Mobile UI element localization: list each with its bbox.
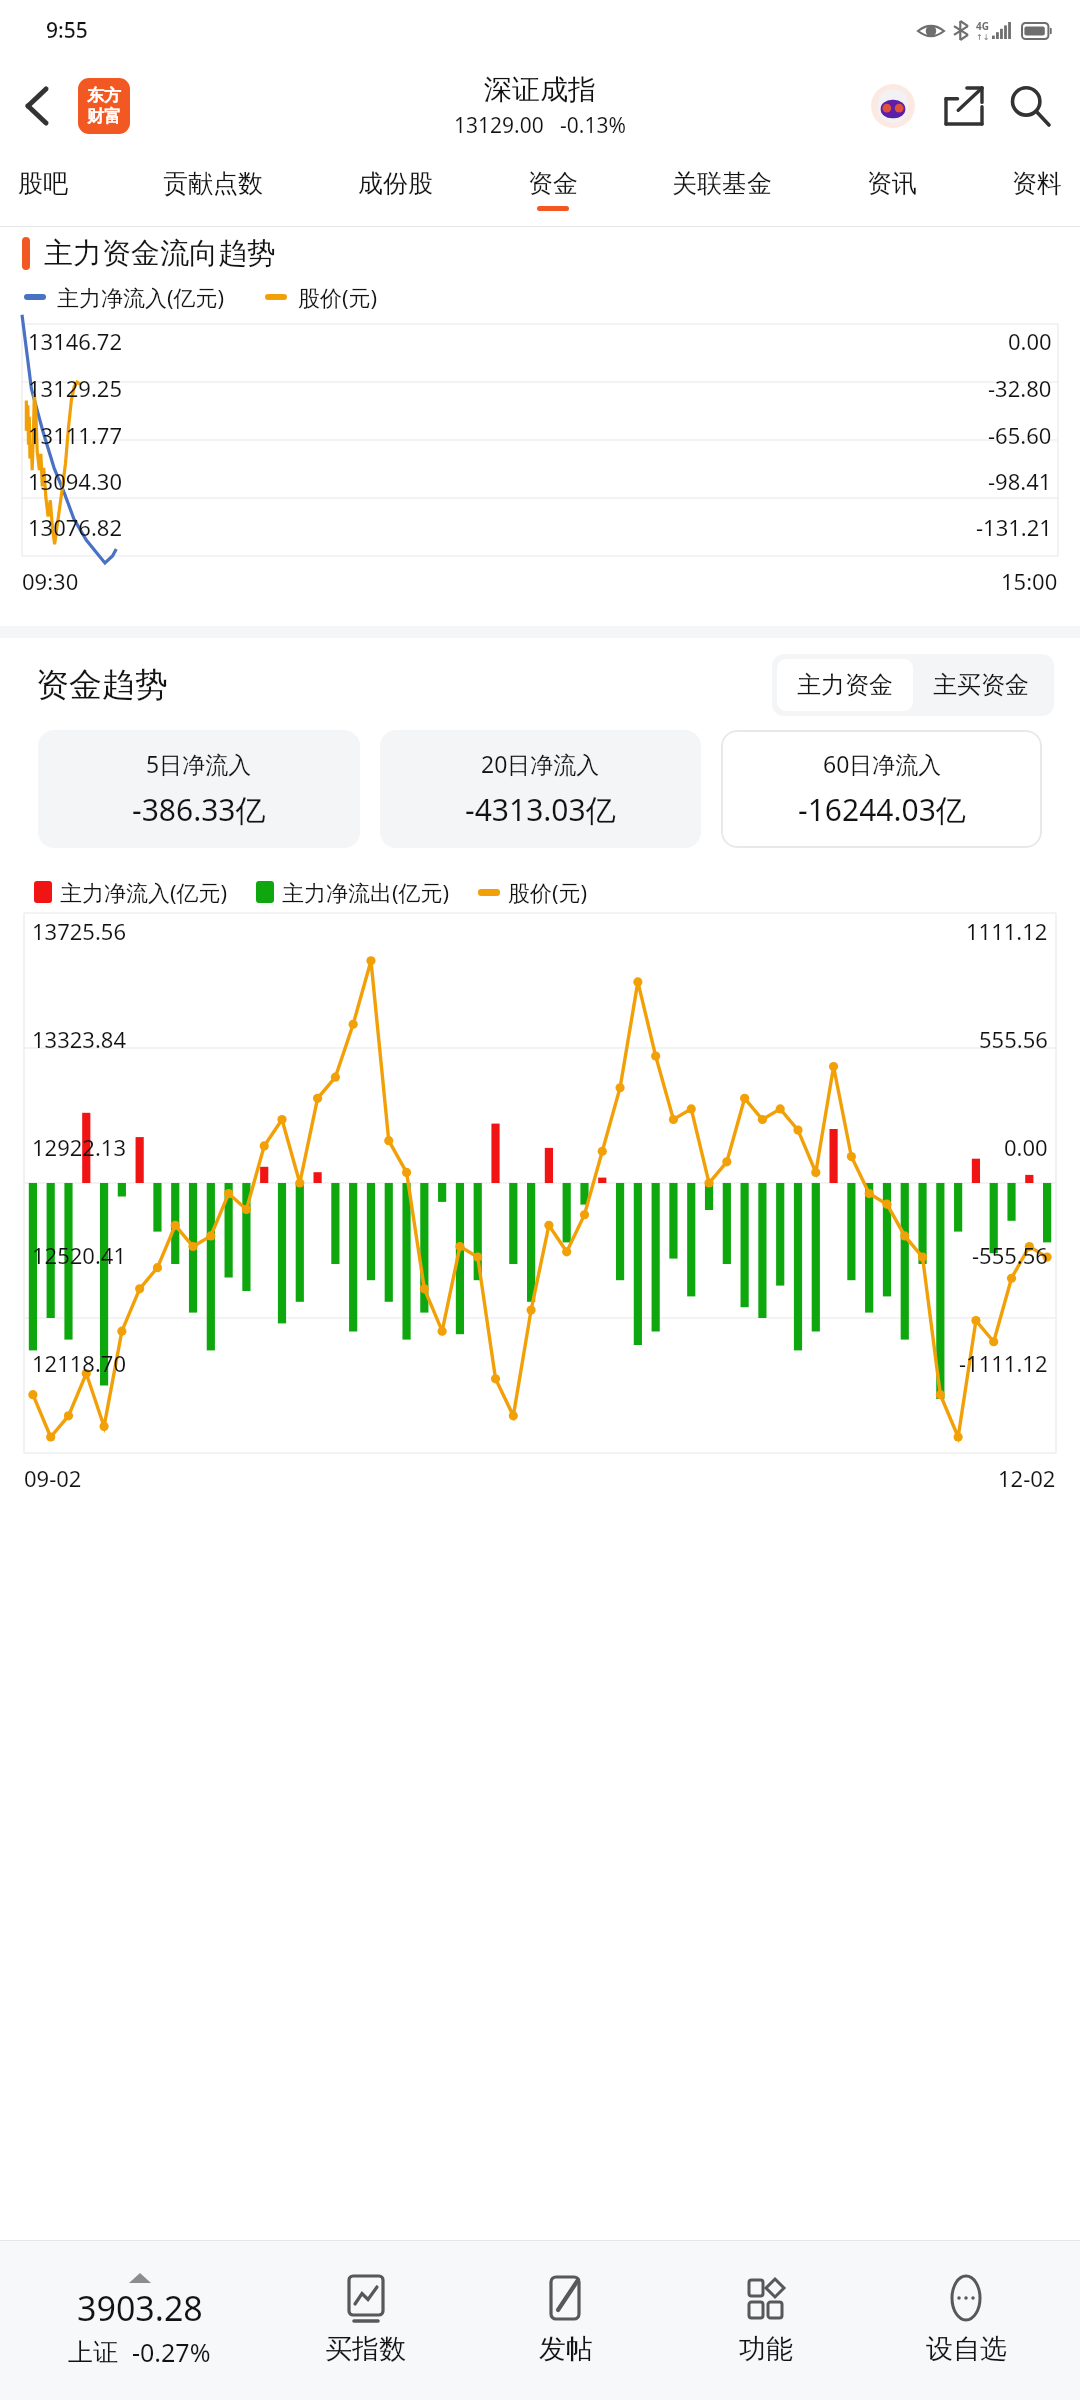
button[interactable]: Search — [1002, 78, 1058, 134]
button[interactable]: 发帖 — [466, 2268, 666, 2374]
staticText: 发帖 — [539, 2332, 593, 2366]
staticText: 贡献点数 — [163, 168, 263, 199]
staticText: 0.00 — [1004, 1132, 1048, 1162]
button[interactable]: 设自选 — [866, 2268, 1066, 2374]
staticText: 主买资金 — [933, 670, 1029, 700]
staticText: 1111.12 — [966, 916, 1048, 946]
staticText: 13111.77 — [28, 420, 122, 450]
staticText: 设自选 — [926, 2332, 1007, 2366]
button[interactable]: 5日净流入 — [38, 730, 360, 848]
staticText: 主力资金流向趋势 — [44, 235, 276, 272]
button[interactable]: 资料 — [1008, 164, 1066, 215]
staticText: -131.21 — [976, 512, 1052, 542]
staticText: 13323.84 — [32, 1024, 126, 1054]
button[interactable]: 买指数 — [265, 2268, 466, 2374]
staticText: 主力净流入(亿元) — [60, 877, 228, 907]
staticText: 12118.70 — [32, 1348, 126, 1378]
staticText: 主力资金 — [797, 670, 893, 700]
button[interactable]: Back — [18, 81, 54, 131]
staticText: 资讯 — [867, 168, 917, 199]
button[interactable]: East Money — [78, 78, 130, 134]
staticText: 13725.56 — [32, 916, 126, 946]
button[interactable]: 贡献点数 — [159, 164, 267, 215]
staticText: -386.33亿 — [132, 789, 266, 830]
staticText: 关联基金 — [672, 168, 772, 199]
staticText: 09-02 — [24, 1463, 82, 1493]
staticText: 60日净流入 — [823, 748, 942, 779]
button[interactable]: 功能 — [666, 2268, 866, 2374]
staticText: 3903.28 — [77, 2285, 203, 2331]
staticText: 上证 — [68, 2337, 118, 2368]
button[interactable]: 20日净流入 — [380, 730, 701, 848]
staticText: -0.27% — [132, 2335, 211, 2369]
button[interactable]: 主力资金 — [777, 659, 913, 711]
staticText: 股价(元) — [508, 877, 588, 907]
staticText: ↑↓ — [976, 33, 990, 42]
staticText: 功能 — [739, 2332, 793, 2366]
staticText: -4313.03亿 — [465, 789, 616, 830]
staticText: 深证成指 — [484, 72, 596, 107]
staticText: 资金 — [528, 168, 578, 199]
staticText: 0.00 — [1008, 326, 1052, 356]
staticText: 9:55 — [46, 16, 88, 45]
staticText: 15:00 — [1001, 566, 1058, 596]
staticText: 12922.13 — [32, 1132, 126, 1162]
button[interactable]: Assistant — [864, 77, 922, 135]
button[interactable]: 60日净流入 — [721, 730, 1042, 848]
staticText: -98.41 — [988, 466, 1052, 496]
button[interactable]: 3903.28 — [14, 2267, 265, 2375]
staticText: 股价(元) — [298, 282, 378, 312]
staticText: 成份股 — [358, 168, 433, 199]
staticText: 20日净流入 — [481, 748, 600, 779]
staticText: 资料 — [1012, 168, 1062, 199]
staticText: 4G — [976, 19, 989, 33]
staticText: -555.56 — [972, 1240, 1048, 1270]
staticText: 12-02 — [998, 1463, 1056, 1493]
staticText: 财富 — [87, 106, 121, 127]
staticText: -16244.03亿 — [798, 789, 966, 830]
staticText: 13129.25 — [28, 373, 122, 403]
staticText: 09:30 — [22, 566, 79, 596]
staticText: 555.56 — [979, 1024, 1048, 1054]
button[interactable]: 主买资金 — [913, 659, 1049, 711]
staticText: 买指数 — [325, 2332, 406, 2366]
staticText: 13094.30 — [28, 466, 122, 496]
button[interactable]: Share — [936, 78, 992, 134]
staticText: 主力净流出(亿元) — [282, 877, 450, 907]
button[interactable]: 成份股 — [354, 164, 437, 215]
staticText: -0.13% — [560, 111, 626, 140]
staticText: 主力净流入(亿元) — [57, 282, 225, 312]
staticText: 12520.41 — [32, 1240, 126, 1270]
button[interactable]: 资讯 — [863, 164, 921, 215]
staticText: -32.80 — [988, 373, 1052, 403]
button[interactable]: 股吧 — [14, 164, 72, 215]
staticText: 股吧 — [18, 168, 68, 199]
staticText: 13076.82 — [28, 512, 122, 542]
button[interactable]: 资金 — [524, 164, 582, 215]
staticText: 13129.00 — [454, 111, 544, 140]
staticText: 5日净流入 — [146, 748, 252, 779]
staticText: -65.60 — [988, 420, 1052, 450]
staticText: 东方 — [87, 85, 121, 106]
staticText: 资金趋势 — [36, 664, 168, 706]
staticText: 13146.72 — [28, 326, 122, 356]
button[interactable]: 关联基金 — [668, 164, 776, 215]
staticText: -1111.12 — [959, 1348, 1048, 1378]
